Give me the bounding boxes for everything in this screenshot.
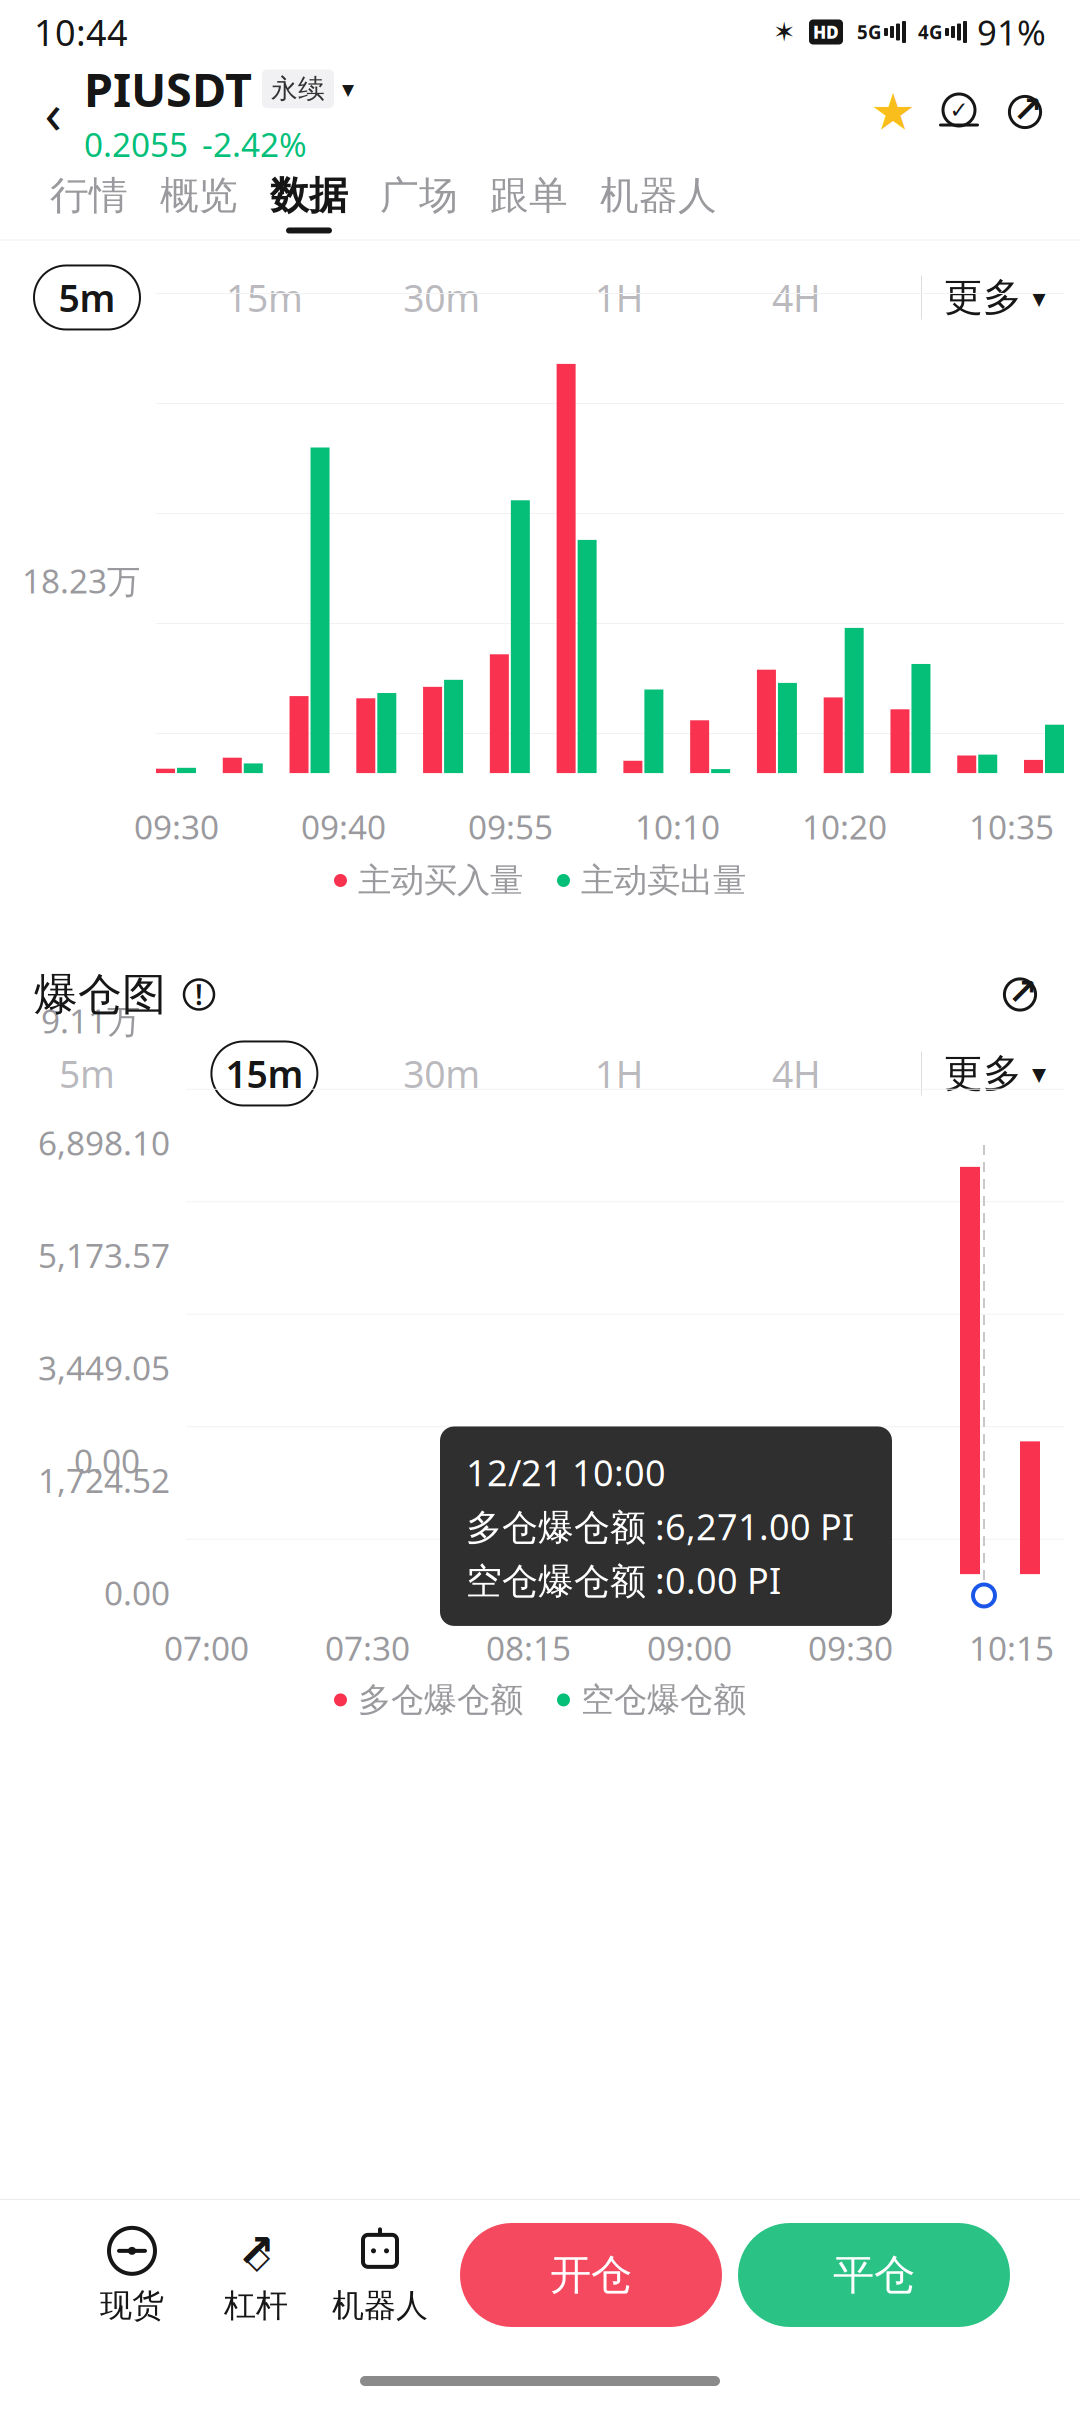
staticText: HD [813, 20, 839, 43]
button[interactable]: 更多 [922, 1041, 1046, 1105]
staticText: 12/21 10:00 [466, 1448, 666, 1496]
button[interactable]: 30m [389, 265, 495, 329]
button[interactable]: 广场 [364, 160, 474, 239]
staticText: 10:44 [34, 8, 128, 56]
staticText: ‹ [44, 75, 61, 149]
staticText: 5m [58, 273, 115, 322]
staticText: 09:00 [647, 1626, 732, 1670]
staticText: 08:15 [486, 1626, 571, 1670]
staticText: 07:00 [164, 1626, 249, 1670]
staticText: ★ [870, 83, 915, 141]
staticText: 10:35 [969, 804, 1054, 849]
staticText: 09:30 [808, 1626, 893, 1670]
button[interactable]: 15m [211, 265, 317, 329]
staticText: 6,898.10 [38, 1120, 170, 1165]
button[interactable]: 4H [744, 1041, 850, 1105]
staticText: 4H [772, 1049, 821, 1098]
staticText: 行情 [50, 172, 128, 219]
staticText: ✶ [773, 17, 795, 47]
staticText: 09:55 [468, 804, 553, 849]
staticText: 空仓爆仓额 [581, 1679, 746, 1720]
staticText: ▾ [1032, 282, 1046, 313]
staticText: 1H [595, 1049, 644, 1098]
staticText: 3,449.05 [38, 1345, 170, 1390]
button[interactable]: 15m [211, 1041, 317, 1105]
button[interactable]: 1H [566, 265, 672, 329]
button[interactable]: 现货 [70, 2216, 194, 2334]
staticText: ↗ [237, 2225, 275, 2277]
staticText: 10:10 [635, 804, 720, 849]
button[interactable]: 数据 [254, 160, 364, 239]
staticText: ▾ [342, 75, 354, 102]
staticText: 机器人 [600, 172, 717, 219]
button[interactable]: 5m [34, 265, 140, 329]
staticText: 杠杆 [224, 2286, 288, 2325]
button[interactable]: 机器人 [318, 2216, 442, 2334]
staticText: ↗ [1012, 89, 1042, 130]
staticText: 更多 [944, 274, 1022, 321]
staticText: 平仓 [833, 2250, 915, 2300]
staticText: 主动卖出量 [581, 860, 746, 901]
staticText: 现货 [100, 2286, 164, 2325]
button[interactable]: 概览 [144, 160, 254, 239]
staticText: 30m [403, 1049, 480, 1098]
staticText: 机器人 [332, 2286, 428, 2325]
staticText: ! [195, 976, 203, 1013]
staticText: 9.11万 [41, 998, 140, 1043]
staticText: 空仓爆仓额 :0.00 PI [466, 1556, 781, 1604]
staticText: 09:30 [134, 804, 219, 849]
staticText: 广场 [380, 172, 458, 219]
button[interactable]: Price alert [926, 77, 992, 147]
staticText: 10:15 [969, 1626, 1054, 1670]
button[interactable]: 5m [34, 1041, 140, 1105]
button[interactable]: 跟单 [474, 160, 584, 239]
button[interactable]: 机器人 [584, 160, 733, 239]
button[interactable]: 1H [566, 1041, 672, 1105]
staticText: 15m [225, 1049, 303, 1098]
staticText: 5m [59, 1049, 115, 1098]
button[interactable]: 更多 [922, 265, 1046, 329]
staticText: PIUSDT [84, 58, 252, 120]
staticText: 多仓爆仓额 [358, 1679, 523, 1720]
staticText: 1,724.52 [38, 1458, 170, 1502]
button[interactable]: 永续 [262, 69, 354, 108]
staticText: 概览 [160, 172, 238, 219]
staticText: 10:20 [802, 804, 887, 849]
staticText: 0.2055 [84, 122, 188, 166]
button[interactable]: Favorite [860, 77, 926, 147]
staticText: ◇ [243, 2236, 270, 2275]
staticText: 4H [772, 273, 821, 322]
button[interactable]: ↗ [194, 2216, 318, 2334]
staticText: 27.35万 [22, 118, 140, 163]
staticText: 09:40 [301, 804, 386, 849]
staticText: 07:30 [325, 1626, 410, 1670]
staticText: 主动买入量 [358, 860, 523, 901]
staticText: 30m [403, 273, 480, 322]
button[interactable]: Share chart [994, 968, 1046, 1020]
staticText: 0.00 [74, 1438, 140, 1483]
button[interactable]: Share [992, 77, 1058, 147]
staticText: 爆仓图 [34, 967, 166, 1021]
staticText: 5G [857, 20, 882, 44]
staticText: 多仓爆仓额 :6,271.00 PI [466, 1502, 854, 1550]
button[interactable]: Back [22, 70, 84, 154]
staticText: 0.00 [104, 1570, 170, 1615]
button[interactable]: Info [180, 975, 218, 1013]
staticText: 开仓 [550, 2250, 632, 2300]
button[interactable]: 4H [744, 265, 850, 329]
staticText: -2.42% [202, 122, 307, 166]
staticText: 永续 [271, 72, 325, 105]
staticText: 1H [595, 273, 644, 322]
button[interactable]: 平仓 [738, 2223, 1010, 2327]
staticText: ▾ [1032, 1058, 1046, 1089]
staticText: 更多 [944, 1050, 1022, 1097]
staticText: 15m [226, 273, 303, 322]
staticText: 5,173.57 [38, 1233, 170, 1277]
button[interactable]: 行情 [34, 160, 144, 239]
button[interactable]: 30m [389, 1041, 495, 1105]
staticText: 91% [977, 9, 1046, 55]
staticText: 4G [918, 20, 943, 44]
button[interactable]: 开仓 [460, 2223, 722, 2327]
staticText: 18.23万 [22, 558, 140, 603]
staticText: 数据 [270, 172, 348, 219]
